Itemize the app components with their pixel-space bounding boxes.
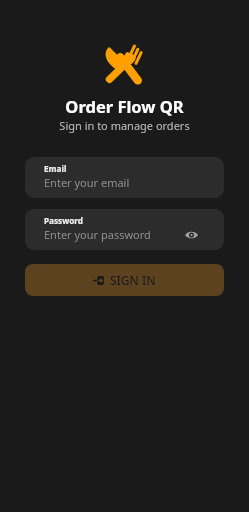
staticText: SIGN IN [110,272,156,288]
staticText: Enter your password [44,227,151,242]
button[interactable]: Show password [181,225,201,245]
staticText: Email [44,163,67,174]
other: Restaurant [102,40,148,86]
staticText: Sign in to manage orders [59,118,190,133]
button[interactable]: Email [25,157,224,198]
staticText: Password [44,215,84,226]
button[interactable]: Password [25,209,224,250]
staticText: Order Flow QR [65,95,184,117]
button[interactable]: SIGN IN [25,264,224,296]
staticText: Enter your email [44,175,130,190]
